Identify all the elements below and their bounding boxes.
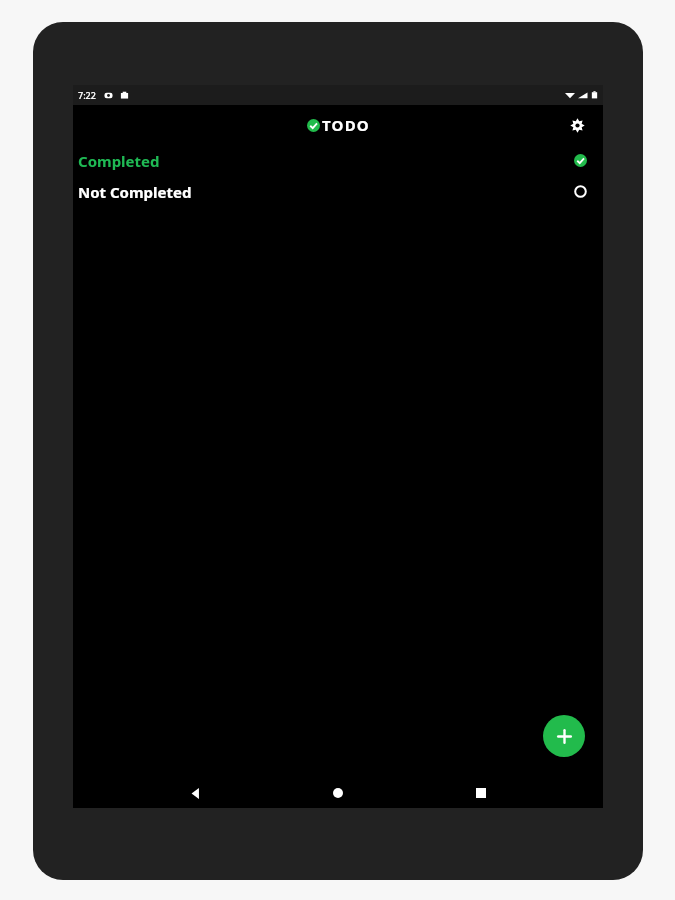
- button[interactable]: Not Completed: [73, 176, 603, 207]
- staticText: Completed: [78, 151, 160, 171]
- button[interactable]: Add task: [543, 715, 585, 757]
- button[interactable]: Completed: [73, 145, 603, 176]
- button[interactable]: Home: [318, 778, 358, 808]
- staticText: 7:22: [78, 89, 96, 101]
- button[interactable]: Settings: [564, 112, 590, 138]
- button[interactable]: Back: [176, 778, 216, 808]
- staticText: Not Completed: [78, 182, 192, 202]
- button[interactable]: Recent apps: [461, 778, 501, 808]
- staticText: TODO: [322, 115, 370, 135]
